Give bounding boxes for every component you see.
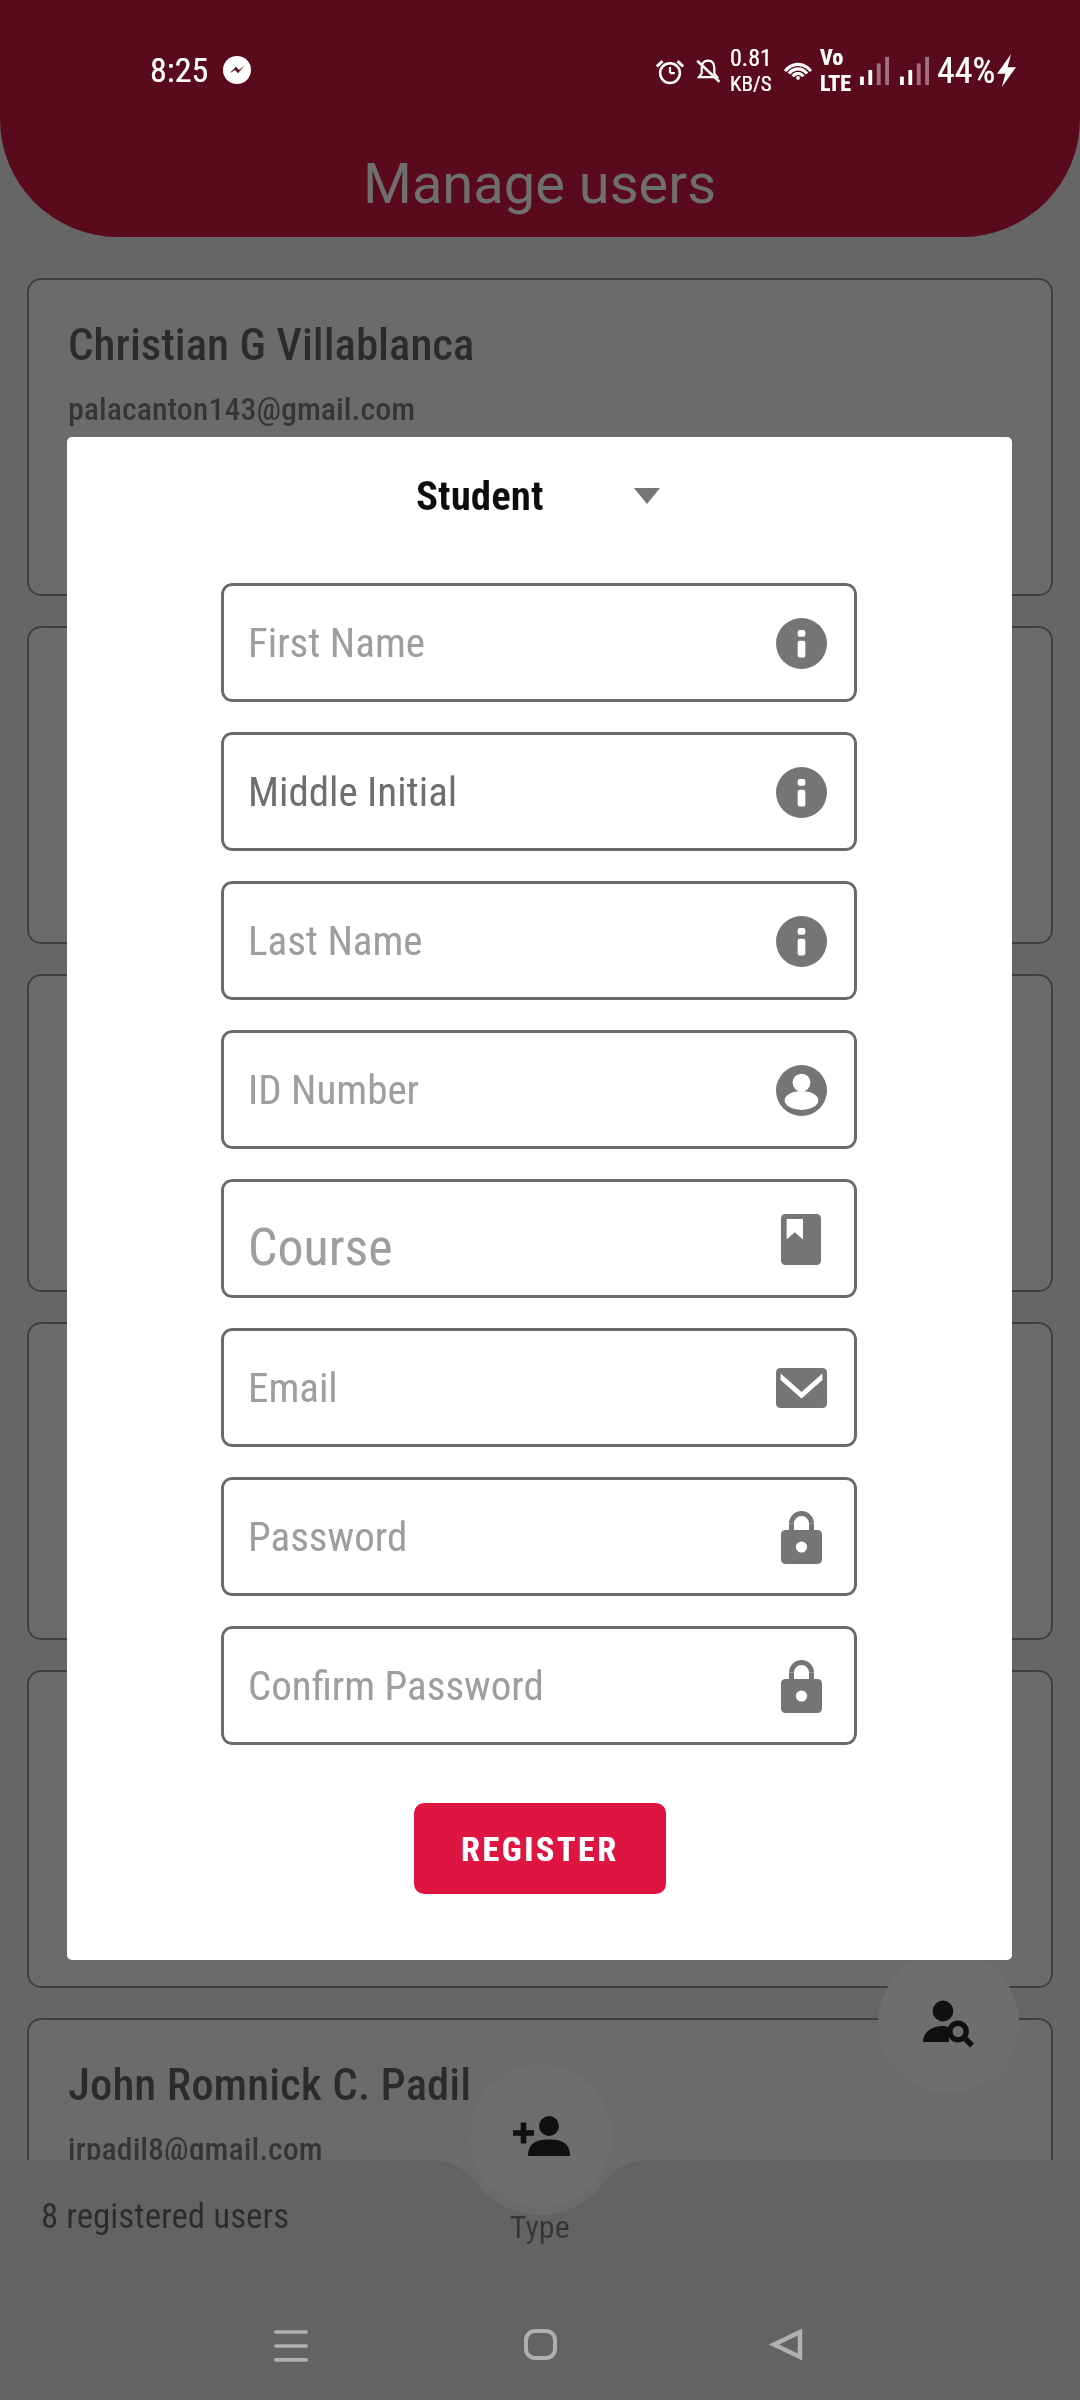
staticText: Email — [248, 1364, 338, 1412]
button[interactable] — [27, 1322, 1053, 1640]
button[interactable]: Password — [221, 1477, 857, 1596]
staticText: 8 registered users — [41, 2196, 290, 2237]
staticText: ID Number — [248, 1066, 420, 1114]
staticText: Course — [248, 1217, 393, 1278]
button[interactable] — [27, 626, 1053, 944]
staticText: Confirm Password — [248, 1662, 544, 1710]
button[interactable] — [27, 1670, 1053, 1988]
staticText: First Name — [248, 619, 425, 667]
staticText: jrpadil8@gmail.com — [68, 2130, 323, 2168]
staticText: Christian G Villablanca — [68, 318, 475, 371]
button[interactable]: Christian G Villablanca — [27, 278, 1053, 596]
staticText: Type — [510, 2208, 570, 2246]
staticText: Last Name — [248, 917, 423, 965]
button[interactable]: Recents — [259, 2312, 323, 2376]
button[interactable]: First Name — [221, 583, 857, 702]
staticText: Vo — [820, 45, 844, 71]
button[interactable]: Middle Initial — [221, 732, 857, 851]
staticText: REGISTER — [461, 1829, 619, 1869]
button[interactable]: John Romnick C. Padil — [27, 2018, 1053, 2336]
staticText: Password — [248, 1513, 408, 1561]
staticText: Student — [416, 472, 544, 520]
button[interactable]: Last Name — [221, 881, 857, 1000]
button[interactable]: Student — [67, 472, 1012, 520]
staticText: 8:25 — [150, 50, 209, 90]
staticText: palacanton143@gmail.com — [68, 390, 416, 428]
button[interactable]: Back — [755, 2312, 819, 2376]
staticText: Manage users — [363, 151, 717, 217]
button[interactable]: Home — [508, 2312, 572, 2376]
button[interactable]: Course — [221, 1179, 857, 1298]
button[interactable]: Email — [221, 1328, 857, 1447]
button[interactable]: Add user — [470, 2065, 612, 2207]
button[interactable] — [27, 974, 1053, 1292]
button[interactable]: ID Number — [221, 1030, 857, 1149]
staticText: John Romnick C. Padil — [68, 2058, 472, 2111]
button[interactable]: Search user — [878, 1952, 1019, 2093]
staticText: LTE — [820, 71, 852, 97]
button[interactable]: Confirm Password — [221, 1626, 857, 1745]
staticText: 44% — [937, 50, 996, 92]
staticText: Middle Initial — [248, 768, 458, 816]
staticText: 0.81 — [730, 44, 772, 72]
staticText: KB/S — [730, 72, 772, 97]
button[interactable]: REGISTER — [414, 1803, 666, 1894]
